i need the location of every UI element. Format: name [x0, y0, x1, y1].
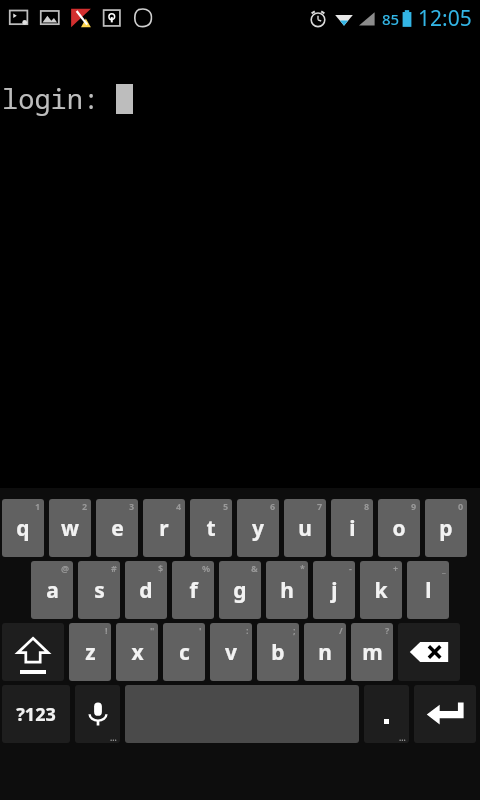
staticText: h: [280, 576, 294, 605]
staticText: q: [16, 514, 30, 543]
staticText: @: [61, 562, 70, 574]
staticText: 85: [382, 9, 400, 29]
button[interactable]: c: [163, 623, 205, 681]
button[interactable]: x: [116, 623, 158, 681]
staticText: ...: [110, 732, 117, 743]
button[interactable]: l: [407, 561, 449, 619]
staticText: 4: [176, 500, 182, 512]
staticText: p: [439, 514, 453, 543]
button[interactable]: i: [331, 499, 373, 557]
button[interactable]: j: [313, 561, 355, 619]
button[interactable]: g: [219, 561, 261, 619]
staticText: !: [105, 624, 108, 636]
button[interactable]: h: [266, 561, 308, 619]
staticText: :: [246, 624, 249, 636]
staticText: 1: [35, 500, 41, 512]
staticText: m: [362, 638, 383, 667]
staticText: o: [392, 514, 406, 543]
staticText: z: [85, 638, 96, 667]
staticText: _: [442, 562, 446, 574]
staticText: v: [225, 638, 237, 667]
staticText: &: [251, 562, 258, 574]
staticText: #: [111, 562, 117, 574]
staticText: +: [393, 562, 399, 574]
button[interactable]: Enter: [414, 685, 476, 743]
button[interactable]: f: [172, 561, 214, 619]
staticText: /: [339, 624, 343, 636]
staticText: %: [202, 562, 211, 574]
button[interactable]: n: [304, 623, 346, 681]
staticText: 8: [364, 500, 370, 512]
staticText: 12:05: [418, 4, 472, 33]
staticText: *: [300, 562, 305, 574]
staticText: w: [61, 514, 79, 543]
staticText: g: [233, 576, 247, 605]
button[interactable]: Backspace: [398, 623, 460, 681]
staticText: ?123: [16, 702, 56, 727]
staticText: -: [349, 562, 352, 574]
staticText: i: [349, 514, 356, 543]
staticText: x: [131, 638, 144, 667]
staticText: b: [271, 638, 285, 667]
button[interactable]: r: [143, 499, 185, 557]
staticText: 7: [317, 500, 323, 512]
staticText: d: [139, 576, 153, 605]
staticText: u: [298, 514, 312, 543]
staticText: s: [94, 576, 105, 605]
staticText: r: [159, 514, 169, 543]
button[interactable]: z: [69, 623, 111, 681]
staticText: k: [374, 576, 388, 605]
button[interactable]: e: [96, 499, 138, 557]
button[interactable]: v: [210, 623, 252, 681]
button[interactable]: Shift: [2, 623, 64, 681]
button[interactable]: m: [351, 623, 393, 681]
staticText: j: [331, 576, 338, 605]
staticText: f: [189, 576, 198, 605]
button[interactable]: u: [284, 499, 326, 557]
staticText: 0: [458, 500, 464, 512]
button[interactable]: a: [31, 561, 73, 619]
staticText: 3: [129, 500, 135, 512]
staticText: ': [199, 624, 202, 636]
staticText: ?: [385, 624, 390, 636]
button[interactable]: k: [360, 561, 402, 619]
staticText: 6: [270, 500, 276, 512]
button[interactable]: Voice input: [75, 685, 120, 743]
staticText: ": [150, 624, 155, 636]
staticText: 2: [82, 500, 88, 512]
button[interactable]: Period: [364, 685, 409, 743]
staticText: 5: [223, 500, 229, 512]
staticText: t: [206, 514, 216, 543]
button[interactable]: w: [49, 499, 91, 557]
button[interactable]: d: [125, 561, 167, 619]
button[interactable]: y: [237, 499, 279, 557]
staticText: 9: [411, 500, 417, 512]
staticText: $: [158, 562, 164, 574]
staticText: ...: [399, 732, 406, 743]
staticText: ;: [293, 624, 296, 636]
button[interactable]: q: [2, 499, 44, 557]
staticText: e: [111, 514, 124, 543]
button[interactable]: b: [257, 623, 299, 681]
staticText: n: [318, 638, 332, 667]
button[interactable]: t: [190, 499, 232, 557]
button[interactable]: s: [78, 561, 120, 619]
button[interactable]: p: [425, 499, 467, 557]
staticText: a: [46, 576, 59, 605]
staticText: y: [252, 514, 264, 543]
button[interactable]: o: [378, 499, 420, 557]
staticText: l: [425, 576, 432, 605]
button[interactable]: ?123: [2, 685, 70, 743]
staticText: login:: [2, 80, 116, 117]
staticText: c: [179, 638, 190, 667]
